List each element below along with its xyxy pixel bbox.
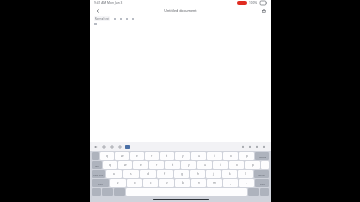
button[interactable]: , xyxy=(223,179,238,187)
staticText: k xyxy=(229,172,231,176)
button[interactable]: Action xyxy=(261,144,266,149)
button[interactable]: . xyxy=(239,179,254,187)
button[interactable]: Format option xyxy=(124,16,129,21)
button[interactable]: caps lock xyxy=(92,170,105,178)
button[interactable]: l xyxy=(238,170,253,178)
button[interactable]: p xyxy=(245,161,260,169)
button[interactable]: Action xyxy=(240,144,245,149)
button[interactable]: r xyxy=(149,161,164,169)
button[interactable]: w xyxy=(115,152,129,160)
staticText: o xyxy=(230,154,232,158)
button[interactable]: shift xyxy=(92,179,109,187)
button[interactable]: Normal text xyxy=(94,16,110,21)
button[interactable]: tab xyxy=(92,161,102,169)
staticText: n xyxy=(198,181,200,185)
button[interactable]: y xyxy=(175,152,190,160)
button[interactable]: Undo xyxy=(93,144,98,149)
button[interactable]: Format option xyxy=(112,16,117,21)
staticText: z xyxy=(117,181,119,185)
button[interactable]: a xyxy=(106,170,122,178)
button[interactable]: u xyxy=(197,161,212,169)
button[interactable]: Format option xyxy=(118,16,123,21)
staticText: Untitled document xyxy=(164,8,197,13)
staticText: r xyxy=(156,163,158,167)
button[interactable]: c xyxy=(143,179,158,187)
button[interactable]: Action xyxy=(247,144,252,149)
staticText: w xyxy=(121,154,124,158)
staticText: e xyxy=(136,154,138,158)
staticText: e xyxy=(140,163,142,167)
staticText: shift xyxy=(98,182,103,185)
button[interactable]: f xyxy=(157,170,173,178)
staticText: 100% xyxy=(249,1,258,5)
staticText: shift xyxy=(260,182,265,185)
staticText: m xyxy=(213,181,216,185)
staticText: return xyxy=(258,173,266,176)
button[interactable]: Modifier key xyxy=(261,161,269,169)
button[interactable]: z xyxy=(110,179,126,187)
button[interactable]: e xyxy=(130,152,144,160)
button[interactable]: Action xyxy=(254,144,259,149)
staticText: y xyxy=(182,154,184,158)
button[interactable]: Editing tool xyxy=(117,144,122,149)
button[interactable]: m xyxy=(207,179,222,187)
staticText: caps lock xyxy=(93,173,104,176)
button[interactable]: g xyxy=(174,170,189,178)
button[interactable]: p xyxy=(239,152,254,160)
button[interactable]: Keyboard layout xyxy=(125,145,130,149)
button[interactable]: Documents xyxy=(94,7,101,14)
staticText: t xyxy=(166,154,168,158)
staticText: tab xyxy=(95,164,99,167)
button[interactable]: o xyxy=(229,161,244,169)
button[interactable]: shift xyxy=(255,179,269,187)
button[interactable]: delete xyxy=(255,152,269,160)
staticText: h xyxy=(197,172,199,176)
staticText: q xyxy=(109,163,111,167)
staticText: i xyxy=(214,154,215,158)
button[interactable]: d xyxy=(140,170,156,178)
staticText: b xyxy=(182,181,184,185)
button[interactable]: return xyxy=(254,170,269,178)
staticText: p xyxy=(246,154,248,158)
button[interactable]: s xyxy=(123,170,139,178)
button[interactable]: r xyxy=(145,152,159,160)
button[interactable]: y xyxy=(181,161,196,169)
button[interactable]: t xyxy=(160,152,174,160)
button[interactable]: t xyxy=(165,161,180,169)
button[interactable]: x xyxy=(127,179,142,187)
staticText: q xyxy=(106,154,108,158)
button[interactable]: i xyxy=(213,161,228,169)
button[interactable]: w xyxy=(118,161,132,169)
button[interactable]: n xyxy=(191,179,206,187)
staticText: u xyxy=(198,154,200,158)
button[interactable]: v xyxy=(159,179,174,187)
button[interactable]: Editing tool xyxy=(109,144,114,149)
button[interactable]: o xyxy=(223,152,238,160)
staticText: s xyxy=(130,172,132,176)
staticText: 9:41 AM Mon Jun 3 xyxy=(94,1,123,5)
button[interactable]: q xyxy=(100,152,114,160)
button[interactable]: e xyxy=(133,161,148,169)
button[interactable]: i xyxy=(207,152,222,160)
button[interactable]: Editing tool xyxy=(101,144,106,149)
staticText: w xyxy=(124,163,127,167)
button[interactable]: Share xyxy=(260,7,267,14)
button[interactable]: q xyxy=(103,161,117,169)
button[interactable]: b xyxy=(175,179,190,187)
staticText: . xyxy=(246,181,247,185)
button[interactable]: u xyxy=(191,152,206,160)
staticText: i xyxy=(220,163,221,167)
staticText: delete xyxy=(259,155,266,158)
staticText: x xyxy=(134,181,136,185)
button[interactable]: k xyxy=(222,170,237,178)
button[interactable]: Format option xyxy=(130,16,135,21)
button[interactable]: j xyxy=(206,170,221,178)
button[interactable]: h xyxy=(190,170,205,178)
